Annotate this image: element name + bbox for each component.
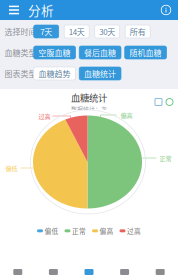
button[interactable]: Tab 5 [142,268,178,276]
staticText: 正常 [159,154,171,162]
button[interactable]: 30天 [95,25,120,38]
staticText: 随机血糖 [130,47,162,58]
staticText: 血糖趋势 [39,68,71,79]
button[interactable]: Tab 2 [36,268,71,276]
staticText: 正常 [72,226,86,236]
button[interactable]: Info [154,0,178,20]
staticText: 偏高 [120,111,132,119]
button[interactable]: 所有 [125,25,150,38]
staticText: 偏高 [99,226,113,236]
staticText: 选择时间 [4,26,36,37]
staticText: 图表类型 [4,68,36,79]
button[interactable]: 14天 [64,25,89,38]
staticText: 过高 [38,112,50,120]
staticText: 14天 [69,26,85,37]
staticText: 30天 [99,26,115,37]
staticText: 血糖统计 [84,68,116,79]
button[interactable]: Tab 4 [107,268,142,276]
button[interactable]: 餐后血糖 [79,46,121,59]
staticText: 7天 [40,26,52,37]
button[interactable]: Save [155,98,162,105]
staticText: 偏低 [44,226,58,236]
staticText: 血糖统计 [71,91,107,104]
button[interactable]: Tab 3 [71,268,107,276]
button[interactable]: 7天 [34,25,59,38]
staticText: 偏低 [5,164,17,172]
button[interactable]: 血糖统计 [79,67,121,80]
button[interactable]: 血糖趋势 [34,67,75,80]
staticText: 血糖类型 [4,47,36,58]
staticText: 分析 [28,1,54,19]
button[interactable]: Tab 1 [0,268,36,276]
staticText: 过高 [127,226,141,236]
button[interactable]: 空腹血糖 [34,46,75,59]
button[interactable]: Menu [0,0,28,20]
staticText: 数据统计：次 [71,105,107,113]
staticText: 餐后血糖 [84,47,116,58]
staticText: 所有 [130,26,146,37]
button[interactable]: Refresh [166,98,173,105]
button[interactable]: 随机血糖 [125,46,166,59]
staticText: 空腹血糖 [39,47,71,58]
